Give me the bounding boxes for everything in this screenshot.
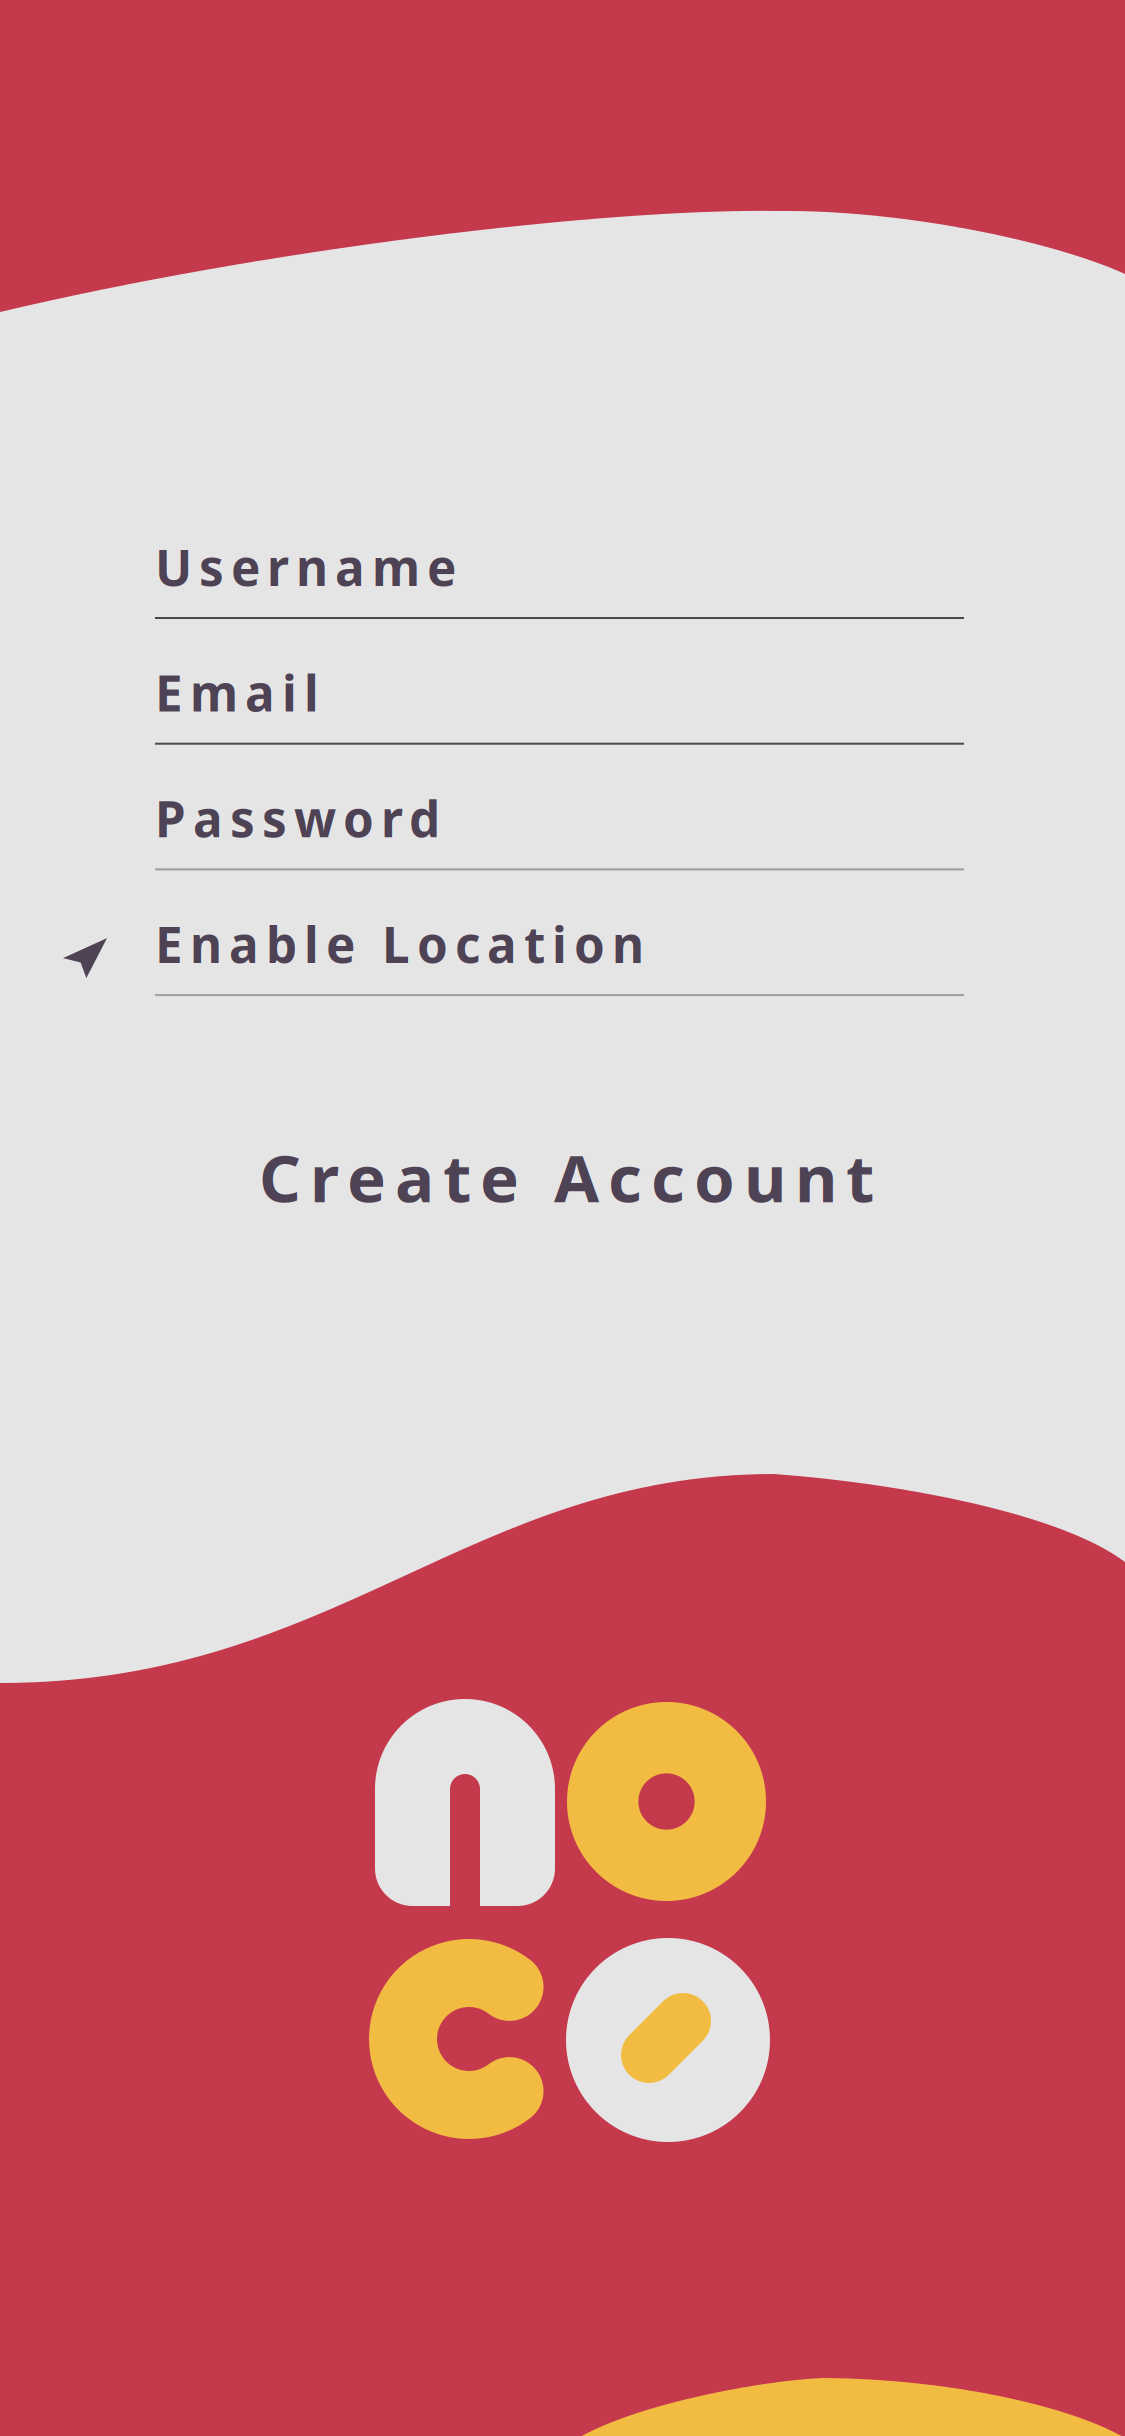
button[interactable]: Enable Location [155, 919, 964, 1045]
staticText: Username [155, 534, 456, 599]
button[interactable]: Password [155, 793, 964, 919]
button[interactable]: Create Account [4, 1132, 1125, 1222]
staticText: Enable Location [155, 911, 644, 977]
button[interactable]: Email [155, 668, 964, 793]
staticText: Password [155, 785, 440, 851]
staticText: Email [155, 660, 319, 725]
button[interactable]: Username [155, 542, 964, 668]
staticText: Create Account [259, 1134, 874, 1220]
